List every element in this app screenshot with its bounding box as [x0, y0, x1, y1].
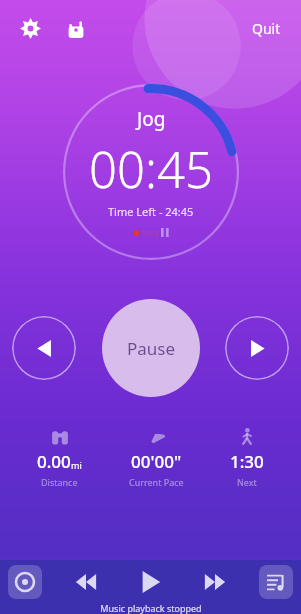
staticText: Time Left - 24:45 — [108, 204, 194, 219]
staticText: Music playback stopped — [100, 602, 202, 614]
staticText: mi — [71, 459, 82, 471]
staticText: easy — [142, 227, 159, 238]
button[interactable]: Fast forward — [194, 561, 236, 603]
staticText: Quit — [252, 19, 281, 38]
staticText: 0.00 — [37, 450, 71, 473]
staticText: 1:30 — [230, 450, 264, 473]
button[interactable]: Lock screen — [56, 8, 96, 48]
button[interactable]: Rewind — [65, 561, 107, 603]
button[interactable]: Previous interval — [12, 316, 76, 380]
staticText: Jog — [137, 106, 166, 132]
button[interactable]: Next interval — [225, 316, 289, 380]
staticText: Next — [237, 476, 257, 488]
staticText: 00:45 — [89, 136, 213, 203]
button[interactable]: 1:30 — [220, 426, 274, 490]
staticText: Distance — [41, 476, 78, 488]
staticText: Pause — [127, 337, 176, 360]
button[interactable]: 00'00" — [119, 426, 194, 490]
button[interactable]: Play — [130, 561, 172, 603]
button[interactable]: 0.00 — [27, 426, 92, 490]
staticText: Current Pace — [129, 476, 184, 488]
button[interactable]: Playlist — [259, 565, 293, 599]
button[interactable]: Music source — [8, 565, 42, 599]
button[interactable]: Pause — [102, 299, 200, 397]
staticText: 00'00" — [131, 450, 182, 473]
button[interactable]: Quit — [242, 13, 291, 44]
button[interactable]: Settings — [10, 8, 50, 48]
